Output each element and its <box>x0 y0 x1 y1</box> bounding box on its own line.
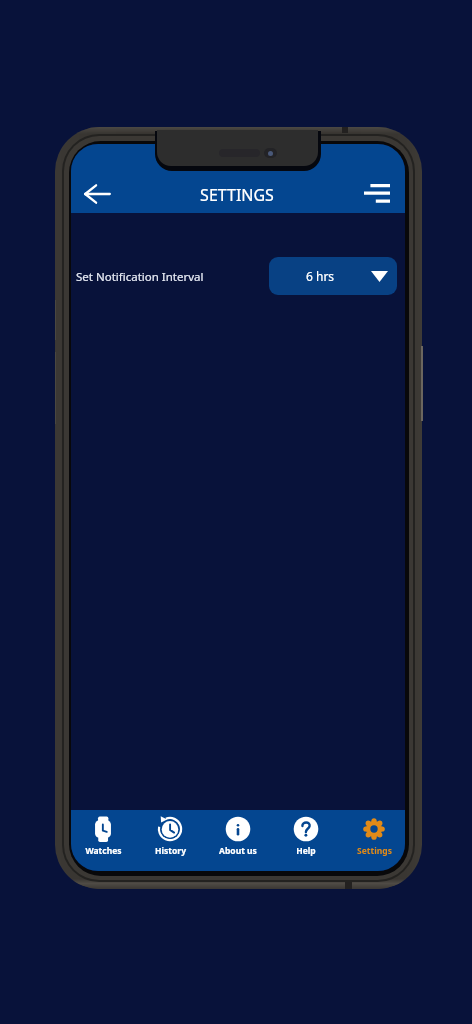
button[interactable]: 6 hrs <box>269 257 397 295</box>
button[interactable]: Settings <box>340 810 405 871</box>
staticText: 6 hrs <box>306 268 335 284</box>
button[interactable]: History <box>136 810 204 871</box>
staticText: Set Notification Interval <box>76 269 204 285</box>
staticText: SETTINGS <box>71 184 404 206</box>
button[interactable]: Watches <box>71 810 137 871</box>
button[interactable]: About us <box>204 810 272 871</box>
staticText: Help <box>296 845 316 857</box>
staticText: Settings <box>357 845 392 857</box>
staticText: Watches <box>85 845 122 857</box>
staticText: About us <box>219 845 257 857</box>
button[interactable]: Back <box>73 170 121 218</box>
button[interactable]: Help <box>272 810 340 871</box>
button[interactable]: Menu <box>340 169 404 217</box>
staticText: History <box>155 845 186 857</box>
